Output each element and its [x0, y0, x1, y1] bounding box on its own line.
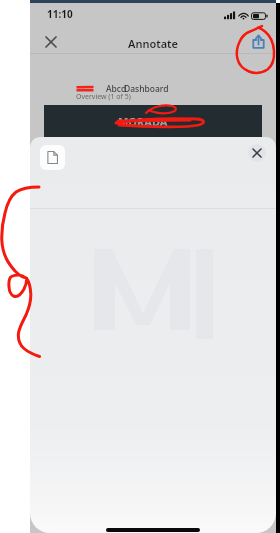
staticText: MORADA	[118, 114, 168, 129]
staticText: Overview (1 of 5)	[76, 92, 131, 102]
button[interactable]: Share	[245, 28, 271, 54]
staticText: Abcd	[106, 83, 127, 95]
button[interactable]: Close sheet	[248, 144, 266, 162]
staticText: 11:10	[47, 7, 73, 21]
staticText: Annotate	[30, 36, 276, 51]
button[interactable]: Close	[38, 29, 64, 55]
staticText: Dashboard	[124, 83, 169, 95]
button[interactable]: Document	[40, 145, 65, 170]
